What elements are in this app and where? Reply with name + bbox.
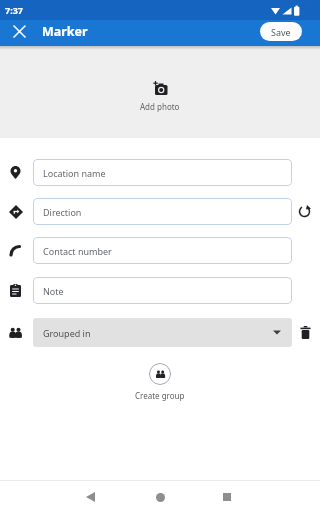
button[interactable]: Note	[33, 277, 292, 304]
button[interactable]: Save	[260, 22, 302, 41]
button[interactable]: Direction	[33, 198, 292, 225]
button[interactable]: Add photo	[140, 81, 180, 112]
button[interactable]	[298, 205, 311, 218]
staticText: 7:37	[5, 4, 23, 16]
staticText: Create group	[135, 390, 185, 401]
button[interactable]	[11, 23, 27, 39]
button[interactable]: Create group	[135, 363, 185, 401]
button[interactable]: Grouped in	[33, 318, 292, 347]
button[interactable]	[300, 326, 311, 339]
staticText: Note	[43, 285, 64, 297]
staticText: Marker	[42, 23, 88, 40]
button[interactable]: Contact number	[33, 237, 292, 264]
staticText: Contact number	[43, 245, 112, 257]
button[interactable]: Location name	[33, 159, 292, 186]
button[interactable]	[219, 489, 235, 505]
staticText: Add photo	[140, 101, 180, 112]
staticText: Grouped in	[43, 327, 91, 339]
staticText: Direction	[43, 206, 82, 218]
staticText: Location name	[43, 167, 106, 179]
button[interactable]	[82, 489, 98, 505]
button[interactable]	[152, 489, 168, 505]
staticText: Save	[271, 26, 291, 38]
